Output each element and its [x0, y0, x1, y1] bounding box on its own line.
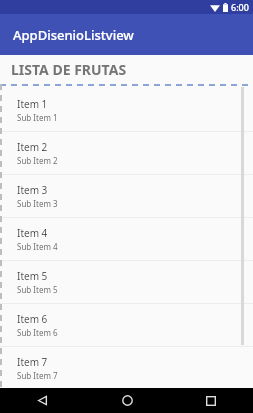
button[interactable]: Item 3 — [0, 175, 253, 217]
button[interactable]: Item 1 — [0, 89, 253, 131]
staticText: Item 4 — [17, 226, 48, 240]
staticText: Item 1 — [17, 97, 48, 111]
staticText: Item 3 — [17, 183, 48, 197]
button[interactable]: Item 5 — [0, 261, 253, 303]
button[interactable]: AppDisenioListview — [0, 14, 253, 55]
staticText: Sub Item 6 — [17, 327, 58, 338]
button[interactable]: Recents — [169, 388, 253, 413]
staticText: Sub Item 4 — [17, 241, 58, 252]
button[interactable]: Item 4 — [0, 218, 253, 260]
button[interactable]: Back — [0, 388, 85, 413]
staticText: Sub Item 2 — [17, 155, 58, 166]
staticText: Item 6 — [17, 312, 48, 326]
staticText: LISTA DE FRUTAS — [11, 60, 127, 79]
staticText: Item 5 — [17, 269, 48, 283]
button[interactable]: Item 7 — [0, 347, 253, 388]
staticText: Item 7 — [17, 355, 48, 369]
staticText: Sub Item 5 — [17, 284, 58, 295]
staticText: 6:00 — [231, 1, 249, 13]
staticText: AppDisenioListview — [13, 26, 134, 44]
button[interactable]: Item 6 — [0, 304, 253, 346]
button[interactable]: Item 2 — [0, 132, 253, 174]
staticText: Sub Item 1 — [17, 112, 58, 123]
staticText: Sub Item 7 — [17, 370, 58, 381]
staticText: Item 2 — [17, 140, 48, 154]
button[interactable]: Home — [85, 388, 169, 413]
staticText: Sub Item 3 — [17, 198, 58, 209]
